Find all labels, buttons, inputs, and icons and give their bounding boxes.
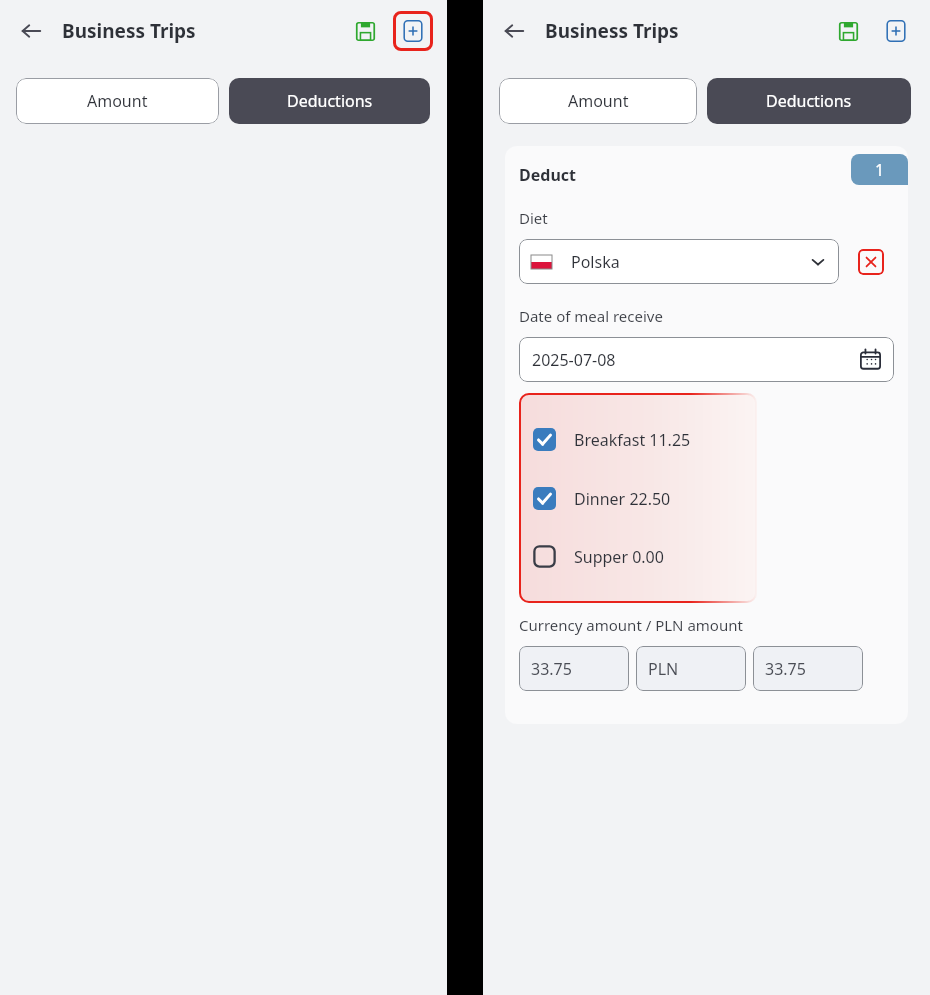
- staticText: PLN: [648, 658, 679, 680]
- button[interactable]: PLN: [636, 646, 746, 691]
- staticText: Amount: [87, 90, 148, 112]
- staticText: 33.75: [765, 658, 806, 680]
- staticText: 33.75: [531, 658, 572, 680]
- staticText: 1: [875, 159, 885, 181]
- staticText: Business Trips: [545, 18, 679, 44]
- button[interactable]: 1: [851, 154, 908, 185]
- button[interactable]: 33.75: [519, 646, 629, 691]
- button[interactable]: Deductions: [229, 78, 430, 124]
- staticText: Deductions: [287, 90, 373, 112]
- button[interactable]: Amount: [16, 78, 219, 124]
- button[interactable]: Polska: [519, 239, 839, 284]
- staticText: Deductions: [766, 90, 852, 112]
- staticText: Amount: [568, 90, 629, 112]
- staticText: Dinner 22.50: [574, 488, 671, 510]
- button[interactable]: Deductions: [707, 78, 911, 124]
- staticText: Polska: [571, 251, 620, 273]
- button[interactable]: 33.75: [753, 646, 863, 691]
- staticText: Date of meal receive: [519, 306, 663, 326]
- button[interactable]: Remove: [858, 249, 884, 275]
- button[interactable]: 2025-07-08: [519, 337, 894, 382]
- button[interactable]: Amount: [499, 78, 697, 124]
- staticText: Deduct: [519, 164, 576, 186]
- staticText: Diet: [519, 208, 548, 228]
- staticText: 2025-07-08: [532, 349, 616, 371]
- button[interactable]: Save: [345, 11, 385, 51]
- staticText: Business Trips: [62, 18, 196, 44]
- button[interactable]: Back: [14, 14, 48, 48]
- button[interactable]: Save: [828, 11, 868, 51]
- button[interactable]: Back: [497, 14, 531, 48]
- staticText: Currency amount / PLN amount: [519, 615, 743, 635]
- button[interactable]: Add: [393, 11, 433, 51]
- button[interactable]: Supper 0.00: [533, 545, 757, 568]
- button[interactable]: Add: [876, 11, 916, 51]
- staticText: Breakfast 11.25: [574, 429, 691, 451]
- button[interactable]: Dinner 22.50: [533, 487, 757, 510]
- staticText: Supper 0.00: [574, 546, 664, 568]
- button[interactable]: Breakfast 11.25: [533, 428, 757, 451]
